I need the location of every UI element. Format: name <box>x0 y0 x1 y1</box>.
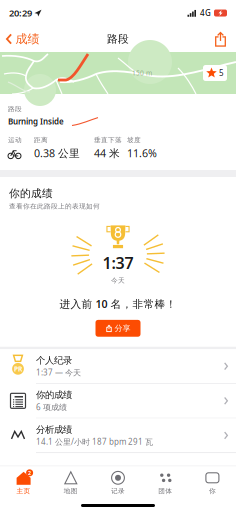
staticText: 20:29 <box>9 7 32 19</box>
button[interactable]: 记录 <box>94 466 142 498</box>
staticText: 个人纪录 <box>36 355 72 366</box>
staticText: 0.38 公里 <box>34 146 80 160</box>
staticText: 2 <box>28 469 31 476</box>
button[interactable]: Share <box>205 26 236 52</box>
button[interactable]: 你的成绩 <box>0 384 236 418</box>
staticText: 查看你在此路段上的表现如何 <box>9 202 100 210</box>
staticText: PR <box>14 364 22 373</box>
staticText: 5 <box>219 68 224 78</box>
button[interactable]: 分析成绩 <box>0 418 236 452</box>
staticText: 坡度 <box>127 136 141 144</box>
button[interactable]: PR <box>0 349 236 383</box>
staticText: 150 m <box>132 69 152 77</box>
staticText: 今天 <box>111 276 125 285</box>
staticText: 成绩 <box>15 32 39 46</box>
button[interactable]: 2 <box>0 466 47 498</box>
staticText: 6 项成绩 <box>36 402 67 412</box>
staticText: Burning Inside <box>8 116 64 127</box>
staticText: 主页 <box>17 487 31 495</box>
staticText: 路段 <box>107 32 129 45</box>
staticText: 1:37 — 今天 <box>36 367 81 378</box>
button[interactable]: 团体 <box>142 466 189 498</box>
button[interactable]: 成绩 <box>0 26 45 52</box>
staticText: 11.6% <box>127 146 157 160</box>
staticText: 44 米 <box>94 146 120 160</box>
button[interactable]: 你 <box>189 466 236 498</box>
staticText: 分析成绩 <box>36 424 72 435</box>
staticText: 路段 <box>8 105 22 113</box>
button[interactable]: 地图 <box>47 466 94 498</box>
staticText: 进入前 10 名，非常棒！ <box>59 297 176 311</box>
staticText: 分享 <box>114 323 130 333</box>
staticText: 记录 <box>111 487 125 495</box>
staticText: 距离 <box>34 136 48 144</box>
staticText: 4G <box>200 8 211 18</box>
staticText: 运动 <box>8 136 22 144</box>
staticText: 你 <box>209 487 216 495</box>
staticText: 垂直下落 <box>94 136 122 144</box>
staticText: 你的成绩 <box>36 389 72 401</box>
button[interactable]: 分享 <box>95 320 140 337</box>
staticText: 团体 <box>158 487 172 495</box>
staticText: 14.1 公里/小时 187 bpm 291 瓦 <box>36 436 153 447</box>
staticText: 你的成绩 <box>9 187 53 200</box>
staticText: 地图 <box>64 487 78 495</box>
staticText: 1:37 <box>102 252 133 273</box>
